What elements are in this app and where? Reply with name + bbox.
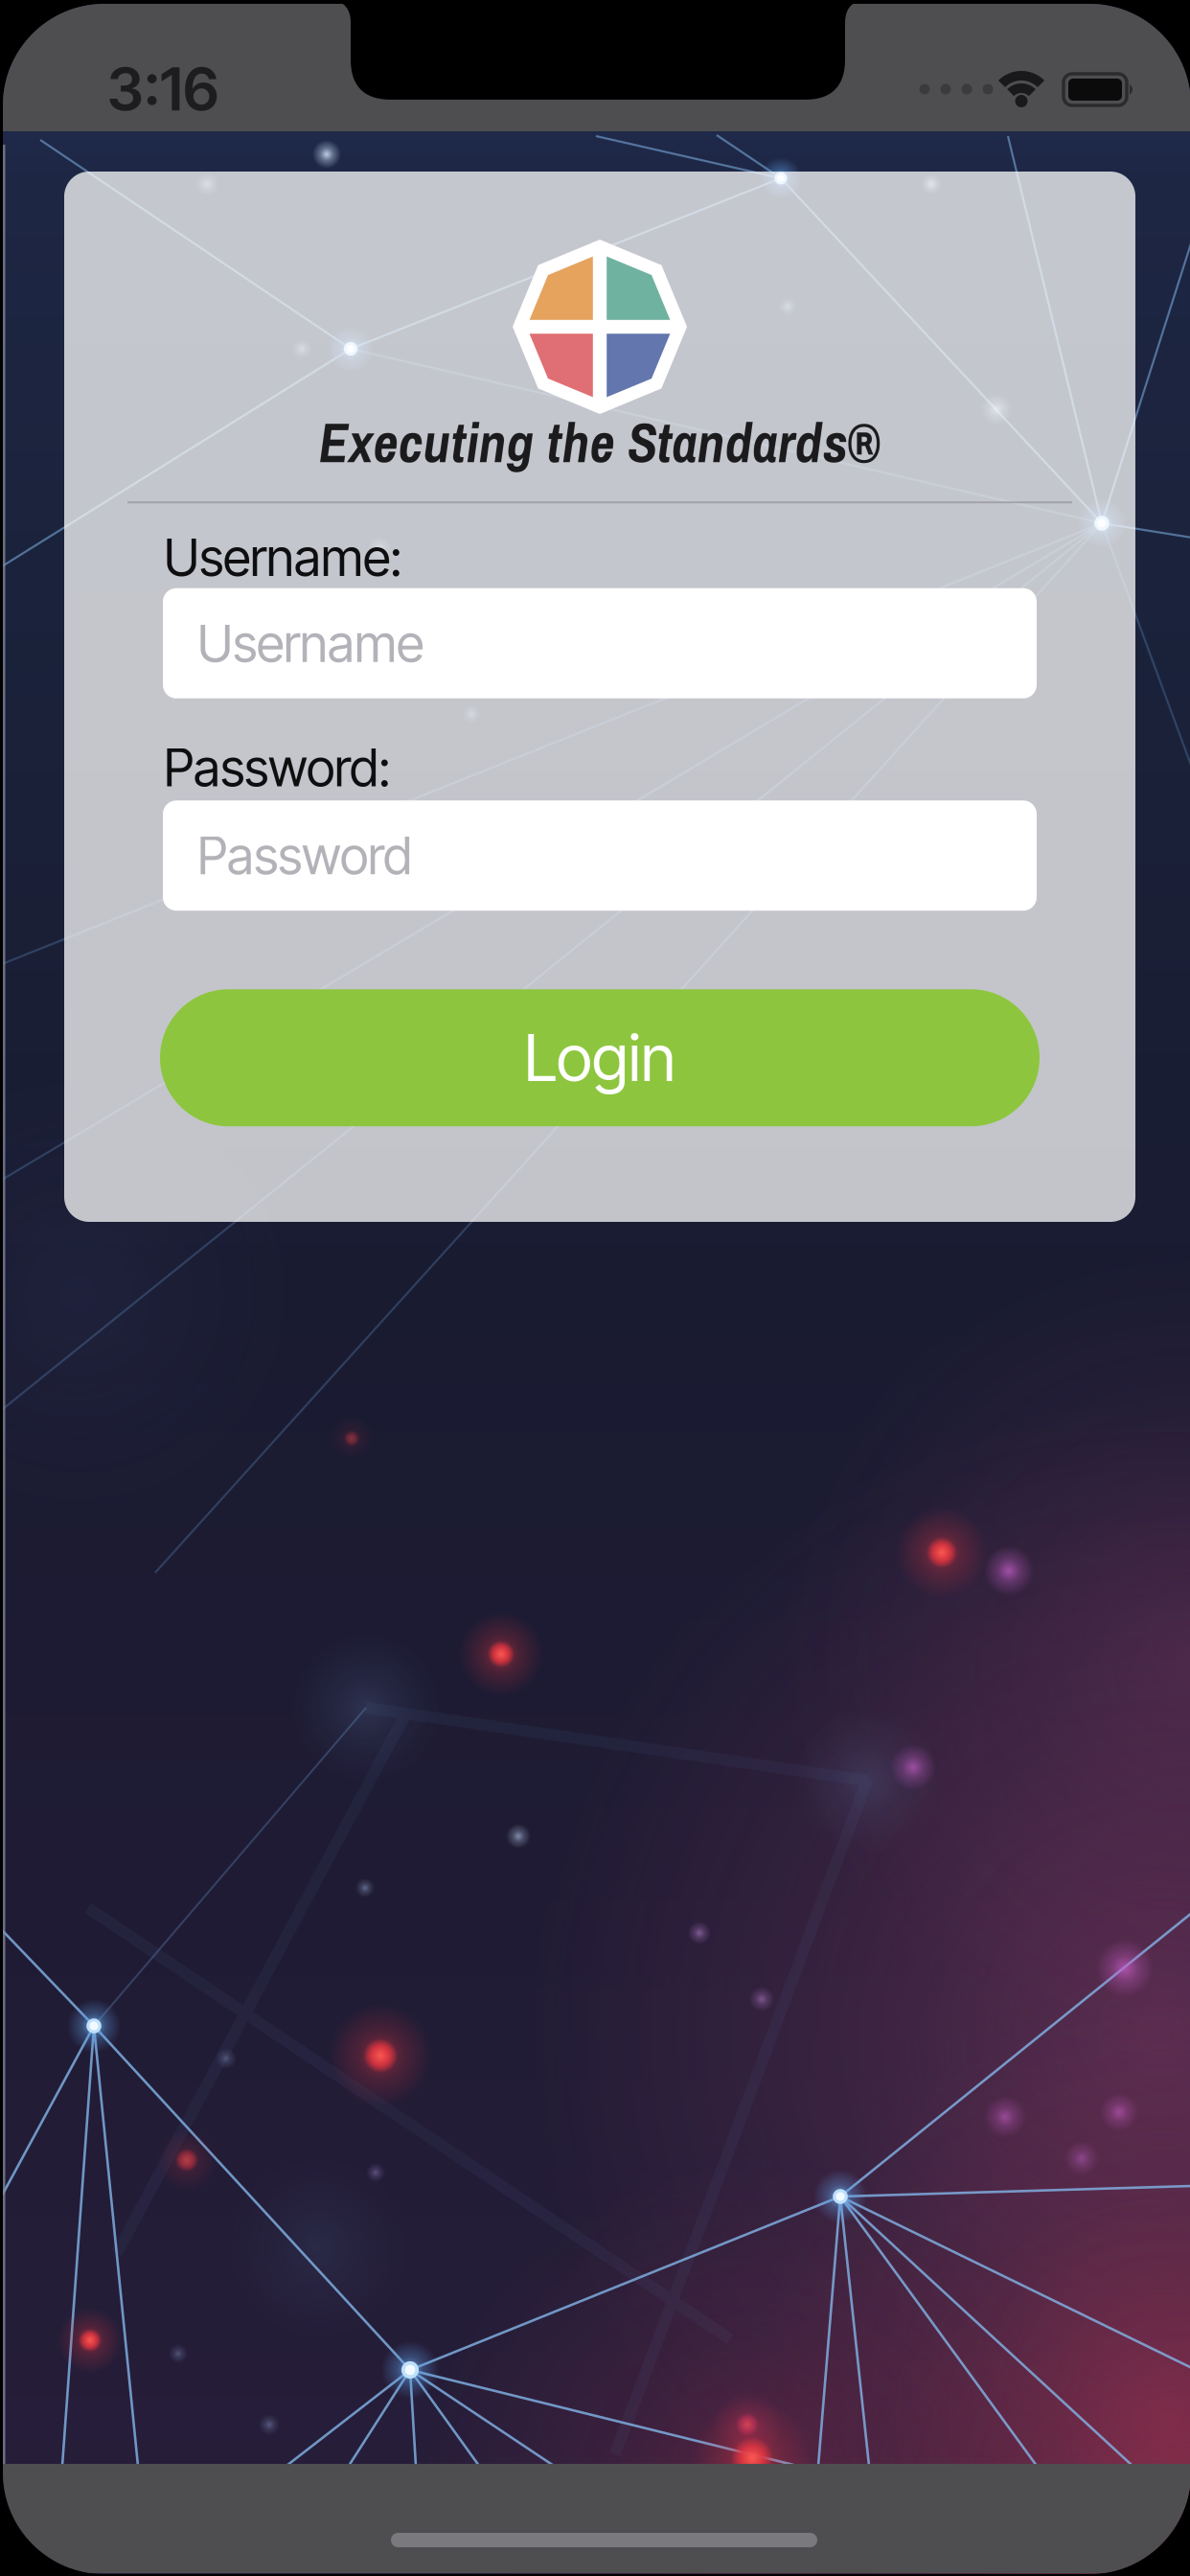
- button[interactable]: Password: [163, 800, 1037, 911]
- staticText: Password: [197, 825, 412, 886]
- button[interactable]: Login: [160, 989, 1040, 1126]
- staticText: 3:16: [107, 54, 218, 125]
- staticText: Password:: [164, 737, 391, 799]
- staticText: Username: [197, 612, 423, 674]
- staticText: Login: [524, 1019, 675, 1097]
- staticText: Executing the Standards®: [319, 405, 881, 479]
- button[interactable]: Username: [163, 588, 1037, 698]
- staticText: Username:: [164, 526, 402, 588]
